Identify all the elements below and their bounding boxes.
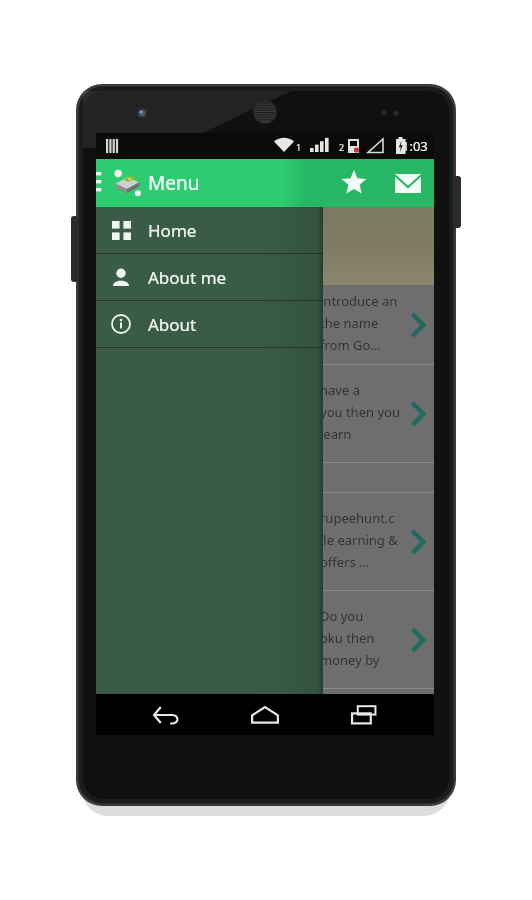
staticText: 2 <box>339 141 345 153</box>
staticText: 1:03 <box>402 137 428 155</box>
staticText: have a <box>320 381 360 399</box>
button[interactable]: have a <box>96 365 434 463</box>
button[interactable] <box>96 463 434 493</box>
button[interactable]: Recent apps <box>335 694 393 735</box>
staticText: About <box>148 313 197 336</box>
staticText: ile earning & <box>320 531 398 549</box>
button[interactable]: Mail <box>384 159 432 207</box>
staticText: About me <box>148 266 227 289</box>
staticText: learn <box>320 425 352 443</box>
button[interactable]: About <box>96 301 323 347</box>
button[interactable]: introduce an <box>96 285 434 365</box>
staticText: from Go... <box>320 336 381 354</box>
staticText: money by <box>320 651 380 669</box>
staticText: oku then you <box>320 629 400 647</box>
staticText: Home <box>148 219 197 242</box>
staticText: the name <box>320 314 379 332</box>
staticText: rupeehunt.com <box>320 509 400 527</box>
button[interactable]: rupeehunt.com <box>96 493 434 591</box>
staticText: Do you <box>320 607 364 625</box>
button[interactable]: Do you <box>96 591 434 689</box>
button[interactable]: Favorites <box>330 159 378 207</box>
button[interactable]: Home <box>96 207 323 253</box>
button[interactable]: Back <box>137 694 195 735</box>
button[interactable]: About me <box>96 254 323 300</box>
staticText: offers ... <box>320 553 370 571</box>
staticText: introduce an <box>320 292 398 310</box>
staticText: 1 <box>296 141 302 153</box>
button[interactable]: Home <box>236 694 294 735</box>
staticText: Menu <box>148 170 200 196</box>
staticText: you then you <box>320 403 400 421</box>
